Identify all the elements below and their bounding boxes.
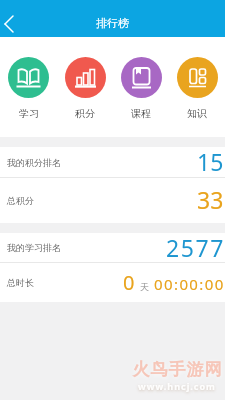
staticText: www.hncj.com (138, 380, 216, 392)
staticText: 学习 (19, 107, 39, 120)
staticText: 我的积分排名 (7, 157, 61, 168)
staticText: 课程 (131, 107, 151, 120)
staticText: 2577 (166, 232, 225, 261)
staticText: 火鸟手游网 (132, 359, 222, 380)
button[interactable]: 总积分 (0, 178, 225, 223)
staticText: 知识 (187, 107, 207, 120)
button[interactable]: 课程 (113, 37, 169, 137)
button[interactable]: 总时长 (0, 263, 225, 302)
staticText: 排行榜 (96, 16, 129, 30)
staticText: 15 (197, 146, 224, 176)
button[interactable]: 知识 (169, 37, 225, 137)
staticText: 00:00:00 (154, 274, 225, 294)
staticText: 总积分 (7, 195, 34, 206)
staticText: 总时长 (7, 277, 34, 288)
button[interactable]: 积分 (57, 37, 113, 137)
staticText: 33 (197, 184, 224, 215)
button[interactable] (0, 0, 28, 37)
staticText: 我的学习排名 (7, 242, 61, 253)
button[interactable]: 学习 (0, 37, 57, 137)
button[interactable]: 我的积分排名 (0, 147, 225, 177)
staticText: 积分 (75, 107, 95, 120)
staticText: 天 (140, 281, 149, 292)
button[interactable]: 我的学习排名 (0, 233, 225, 262)
staticText: 0 (123, 269, 135, 296)
